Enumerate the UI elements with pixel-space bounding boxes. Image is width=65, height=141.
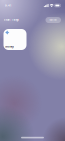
button[interactable]: Good Things — [3, 29, 26, 50]
staticText: Smart Things — [3, 19, 18, 21]
staticText: 9:41 — [5, 4, 11, 7]
button[interactable]: Turn off — [45, 17, 61, 23]
staticText: Good Things — [5, 46, 14, 48]
staticText: Turn off — [49, 19, 57, 21]
